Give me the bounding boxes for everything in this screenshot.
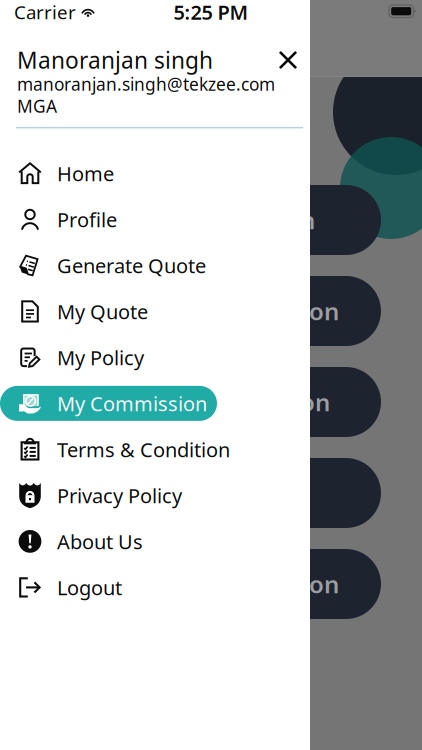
staticText: My Quote xyxy=(57,298,148,325)
button[interactable]: Logout xyxy=(0,564,310,610)
button[interactable]: Privacy Policy xyxy=(0,472,310,518)
button[interactable]: Terms & Condition xyxy=(0,426,310,472)
button[interactable]: Close menu xyxy=(266,38,310,82)
staticText: My Policy xyxy=(57,344,144,371)
staticText: Privacy Policy xyxy=(57,482,182,509)
staticText: Health Commission xyxy=(87,204,315,236)
staticText: My Commission xyxy=(57,390,207,417)
staticText: Manoranjan singh xyxy=(17,45,213,75)
staticText: About Us xyxy=(57,528,143,555)
staticText: 5:25 PM xyxy=(173,0,248,25)
staticText: Home xyxy=(57,160,114,187)
button[interactable]: Profile xyxy=(0,196,310,242)
staticText: Terms & Condition xyxy=(57,436,230,463)
staticText: Carrier xyxy=(14,0,76,24)
staticText: Fire Commission xyxy=(87,477,281,509)
button[interactable]: My Policy xyxy=(0,334,310,380)
staticText: Property Commission xyxy=(87,568,339,600)
button[interactable]: Home xyxy=(0,150,310,196)
staticText: Liability Commission xyxy=(87,386,330,418)
staticText: MGA xyxy=(17,94,57,117)
staticText: Generate Quote xyxy=(57,252,206,279)
button[interactable]: Generate Quote xyxy=(0,242,310,288)
staticText: Profile xyxy=(57,206,117,233)
button[interactable]: My Commission xyxy=(0,380,310,426)
staticText: Logout xyxy=(57,574,122,601)
button[interactable]: About Us xyxy=(0,518,310,564)
button[interactable]: My Quote xyxy=(0,288,310,334)
staticText: manoranjan.singh@tekzee.com xyxy=(17,72,275,95)
staticText: Property Commission xyxy=(87,295,339,327)
